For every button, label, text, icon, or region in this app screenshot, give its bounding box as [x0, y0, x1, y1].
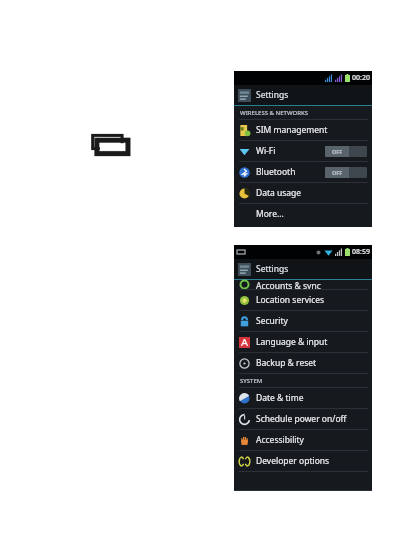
button[interactable]: Language & input	[234, 332, 372, 353]
staticText: Bluetooth	[256, 166, 296, 178]
button[interactable]: Multi window	[91, 133, 133, 157]
staticText: Backup & reset	[256, 357, 317, 369]
staticText: Wi-Fi	[256, 145, 276, 157]
button[interactable]: Developer options	[234, 451, 372, 472]
staticText: OFF	[332, 148, 343, 155]
button[interactable]: Data usage	[234, 183, 372, 204]
button[interactable]: Accounts & sync	[234, 280, 372, 290]
staticText: 08:59	[352, 247, 370, 257]
button[interactable]: Date & time	[234, 388, 372, 409]
button[interactable]: Bluetooth	[234, 162, 372, 183]
staticText: OFF	[332, 169, 343, 176]
button[interactable]: SIM management	[234, 120, 372, 141]
staticText: Settings	[256, 89, 289, 101]
staticText: Security	[256, 315, 288, 327]
staticText: Date & time	[256, 392, 304, 404]
staticText: Location services	[256, 294, 325, 306]
staticText: SIM management	[256, 124, 328, 136]
staticText: Language & input	[256, 336, 328, 348]
button[interactable]: Settings	[234, 259, 372, 279]
button[interactable]: Accessibility	[234, 430, 372, 451]
button[interactable]: Schedule power on/off	[234, 409, 372, 430]
staticText: Schedule power on/off	[256, 413, 347, 425]
button[interactable]: Settings	[234, 85, 372, 105]
staticText: Data usage	[256, 187, 302, 199]
button[interactable]: More...	[234, 204, 372, 224]
staticText: 00:20	[352, 73, 370, 83]
button[interactable]: Wi-Fi	[234, 141, 372, 162]
staticText: Accounts & sync	[256, 280, 321, 289]
staticText: Accessibility	[256, 434, 304, 446]
staticText: Settings	[256, 263, 289, 275]
button[interactable]: Location services	[234, 290, 372, 311]
button[interactable]: Backup & reset	[234, 353, 372, 374]
staticText: SYSTEM	[240, 377, 263, 385]
staticText: More...	[256, 208, 284, 220]
staticText: Developer options	[256, 455, 330, 467]
staticText: WIRELESS & NETWORKS	[240, 109, 309, 117]
button[interactable]: Security	[234, 311, 372, 332]
